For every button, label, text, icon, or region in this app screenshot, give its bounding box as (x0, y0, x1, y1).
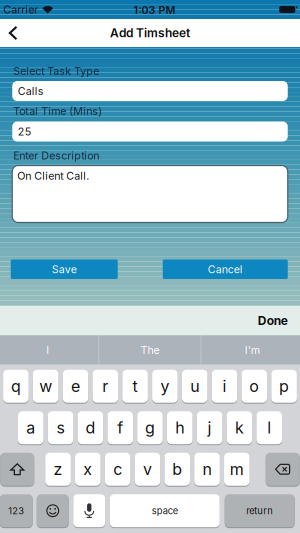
button[interactable]: o (241, 370, 267, 403)
staticText: Enter Description (13, 149, 99, 162)
button[interactable]: Dictate (73, 494, 105, 527)
button[interactable]: n (194, 453, 220, 486)
button[interactable]: I'm (202, 335, 300, 364)
button[interactable]: m (224, 453, 250, 486)
staticText: Total Time (Mins) (13, 105, 102, 117)
button[interactable]: Done (258, 308, 300, 334)
staticText: u (190, 377, 199, 396)
button[interactable]: Save (11, 259, 118, 279)
staticText: Select Task Type (13, 65, 99, 77)
staticText: x (83, 460, 92, 479)
staticText: a (26, 418, 35, 437)
staticText: m (230, 460, 244, 479)
staticText: c (113, 460, 122, 479)
staticText: w (39, 377, 52, 396)
button[interactable]: j (197, 411, 222, 444)
staticText: space (152, 505, 178, 516)
staticText: On Client Call. (17, 169, 89, 182)
staticText: k (235, 418, 244, 437)
staticText: t (133, 377, 138, 396)
button[interactable]: The (99, 335, 201, 364)
staticText: f (117, 418, 123, 437)
staticText: i (222, 377, 226, 396)
button[interactable]: Emoji (37, 494, 69, 527)
staticText: h (175, 418, 184, 437)
button[interactable]: Delete (266, 453, 300, 486)
staticText: n (203, 460, 212, 479)
button[interactable]: w (33, 370, 58, 403)
staticText: q (11, 377, 21, 396)
staticText: I'm (245, 344, 260, 356)
button[interactable]: i (212, 370, 237, 403)
button[interactable]: 123 (0, 494, 33, 527)
button[interactable]: e (63, 370, 88, 403)
button[interactable]: p (271, 370, 297, 403)
staticText: Calls (18, 85, 44, 97)
button[interactable]: Shift (0, 453, 34, 486)
button[interactable]: a (18, 411, 44, 444)
button[interactable]: v (135, 453, 160, 486)
staticText: 25 (18, 125, 31, 138)
staticText: b (172, 460, 182, 479)
staticText: Save (52, 263, 77, 276)
button[interactable]: l (256, 411, 282, 444)
button[interactable]: Back (0, 20, 26, 46)
button[interactable]: k (227, 411, 252, 444)
staticText: y (160, 377, 169, 396)
button[interactable]: c (105, 453, 130, 486)
button[interactable]: u (182, 370, 207, 403)
staticText: Add Timsheet (110, 26, 190, 40)
staticText: I (46, 344, 49, 356)
staticText: The (140, 344, 159, 356)
button[interactable]: t (122, 370, 148, 403)
button[interactable]: f (107, 411, 133, 444)
button[interactable]: x (75, 453, 101, 486)
staticText: d (85, 418, 95, 437)
button[interactable]: I (0, 335, 98, 364)
button[interactable]: z (45, 453, 71, 486)
button[interactable]: s (48, 411, 73, 444)
staticText: g (145, 418, 155, 437)
staticText: s (57, 418, 65, 437)
staticText: o (249, 377, 259, 396)
button[interactable]: h (167, 411, 193, 444)
button[interactable]: q (3, 370, 29, 403)
button[interactable]: d (78, 411, 103, 444)
staticText: Carrier (3, 3, 38, 16)
button[interactable]: g (137, 411, 163, 444)
staticText: p (279, 377, 289, 396)
staticText: e (71, 377, 80, 396)
staticText: r (102, 377, 108, 396)
staticText: j (208, 418, 212, 437)
button[interactable]: r (92, 370, 118, 403)
staticText: v (143, 460, 152, 479)
button[interactable]: space (110, 494, 220, 527)
button[interactable]: return (225, 494, 295, 527)
staticText: Cancel (208, 263, 243, 276)
staticText: 123 (8, 505, 24, 516)
button[interactable]: Cancel (163, 259, 288, 279)
staticText: return (246, 505, 273, 516)
staticText: z (53, 460, 62, 479)
button[interactable]: y (152, 370, 178, 403)
staticText: l (267, 418, 271, 437)
staticText: 1:03 PM (133, 4, 175, 16)
button[interactable]: b (164, 453, 190, 486)
staticText: Done (258, 314, 288, 328)
